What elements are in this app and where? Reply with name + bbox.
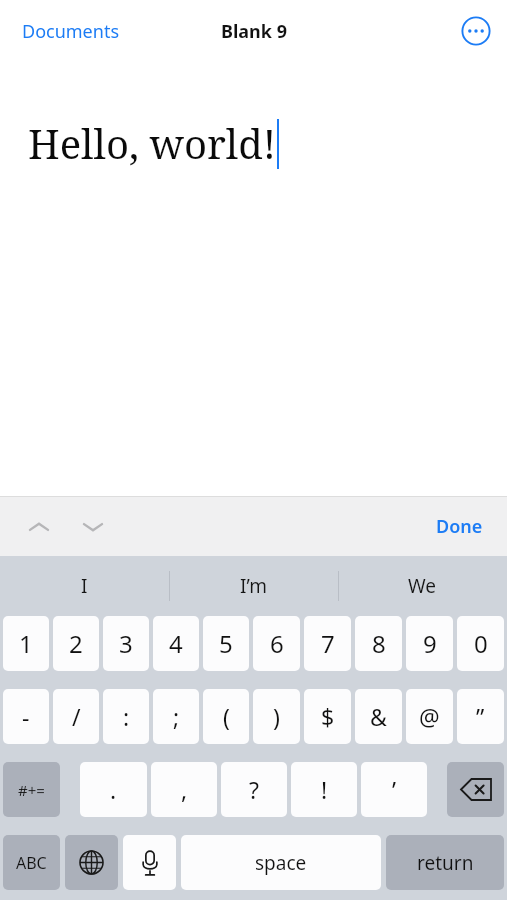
button[interactable]: )	[253, 689, 300, 744]
staticText: ”	[476, 701, 485, 732]
button[interactable]: @	[406, 689, 453, 744]
button[interactable]: $	[304, 689, 351, 744]
button[interactable]: #+=	[3, 762, 60, 817]
staticText: 0	[474, 627, 488, 660]
staticText: !	[321, 774, 328, 805]
staticText: Documents	[22, 19, 120, 44]
staticText: 6	[270, 627, 284, 660]
button[interactable]: !	[291, 762, 357, 817]
button[interactable]: ,	[151, 762, 217, 817]
staticText: .	[110, 774, 117, 805]
staticText: @	[419, 701, 440, 732]
staticText: 4	[169, 627, 183, 660]
button[interactable]: (	[203, 689, 249, 744]
button[interactable]: 8	[355, 616, 402, 671]
staticText: 8	[372, 627, 386, 660]
button[interactable]: Change keyboard language	[65, 835, 118, 890]
button[interactable]: 2	[53, 616, 99, 671]
staticText: ’	[392, 774, 397, 805]
button[interactable]: ABC	[3, 835, 60, 890]
staticText: :	[123, 701, 130, 732]
staticText: (	[223, 701, 230, 732]
button[interactable]: :	[103, 689, 149, 744]
button[interactable]: 3	[103, 616, 149, 671]
staticText: return	[417, 850, 474, 876]
button[interactable]: &	[355, 689, 402, 744]
staticText: ?	[249, 774, 259, 805]
button[interactable]: .	[80, 762, 147, 817]
staticText: ,	[181, 774, 188, 805]
button[interactable]: /	[53, 689, 99, 744]
button[interactable]: 4	[153, 616, 199, 671]
staticText: I	[81, 573, 88, 599]
button[interactable]: space	[181, 835, 381, 890]
button[interactable]: More options	[459, 14, 493, 48]
staticText: Blank 9	[221, 19, 287, 44]
button[interactable]: I	[0, 556, 169, 616]
button[interactable]: Next field	[72, 506, 114, 548]
staticText: I’m	[240, 573, 267, 599]
button[interactable]: Dictate	[123, 835, 176, 890]
staticText: We	[408, 573, 437, 599]
staticText: Done	[436, 514, 483, 539]
staticText: /	[72, 701, 81, 732]
button[interactable]: 5	[203, 616, 249, 671]
staticText: space	[255, 850, 307, 876]
staticText: $	[321, 701, 335, 732]
staticText: 7	[321, 627, 335, 660]
staticText: -	[22, 701, 30, 732]
button[interactable]: ;	[153, 689, 199, 744]
button[interactable]: 1	[3, 616, 49, 671]
staticText: &	[370, 701, 387, 732]
staticText: ;	[173, 701, 180, 732]
button[interactable]: ?	[221, 762, 287, 817]
staticText: Hello, world!	[28, 116, 277, 170]
staticText: 2	[69, 627, 83, 660]
button[interactable]: 9	[406, 616, 453, 671]
button[interactable]: -	[3, 689, 49, 744]
button[interactable]: We	[338, 556, 507, 616]
staticText: 5	[219, 627, 233, 660]
staticText: #+=	[18, 780, 45, 800]
button[interactable]: Delete	[447, 762, 504, 817]
staticText: 3	[119, 627, 133, 660]
button[interactable]: 6	[253, 616, 300, 671]
button[interactable]: Done	[430, 508, 489, 545]
staticText: ABC	[16, 852, 47, 874]
button[interactable]: 0	[457, 616, 504, 671]
button[interactable]: I’m	[169, 556, 338, 616]
button[interactable]: ’	[361, 762, 427, 817]
staticText: )	[273, 701, 280, 732]
button[interactable]: 7	[304, 616, 351, 671]
button[interactable]: Previous field	[18, 506, 60, 548]
button[interactable]: ”	[457, 689, 504, 744]
staticText: 1	[19, 627, 33, 660]
staticText: 9	[423, 627, 437, 660]
button[interactable]: Documents	[12, 13, 130, 50]
button[interactable]: return	[386, 835, 504, 890]
